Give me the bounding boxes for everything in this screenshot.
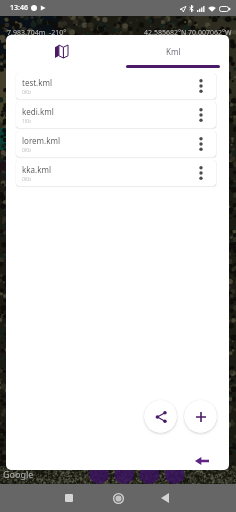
staticText: 42.585682°N 70.007062°W — [144, 28, 232, 38]
staticText: 13:46 — [10, 3, 28, 13]
staticText: kedi.kml — [22, 106, 54, 117]
button[interactable]: Map tab — [6, 38, 117, 65]
staticText: 0Kb — [22, 89, 32, 96]
button[interactable]: More options — [193, 107, 209, 123]
button[interactable]: Share — [144, 400, 177, 433]
staticText: test.kml — [22, 77, 53, 88]
staticText: 0Kb — [22, 176, 32, 183]
staticText: 0Kb — [22, 147, 32, 154]
button[interactable]: kedi.kml — [16, 102, 216, 128]
button[interactable]: More options — [193, 136, 209, 152]
staticText: kka.kml — [22, 164, 51, 175]
staticText: lorem.kml — [22, 135, 60, 146]
button[interactable]: Add — [184, 400, 217, 433]
button[interactable]: Recents — [61, 490, 77, 506]
button[interactable]: Home — [110, 490, 126, 506]
button[interactable]: Kml — [117, 38, 229, 65]
button[interactable]: Back — [194, 453, 210, 469]
button[interactable]: kka.kml — [16, 160, 216, 186]
button[interactable]: More options — [193, 165, 209, 181]
staticText: 7.983.704m -210° — [7, 28, 67, 38]
button[interactable]: More options — [193, 78, 209, 94]
button[interactable]: test.kml — [16, 73, 216, 99]
staticText: Google — [3, 468, 34, 480]
staticText: 1Kb — [22, 118, 32, 125]
staticText: Kml — [166, 46, 181, 57]
button[interactable]: Back — [157, 490, 173, 506]
button[interactable]: lorem.kml — [16, 131, 216, 157]
